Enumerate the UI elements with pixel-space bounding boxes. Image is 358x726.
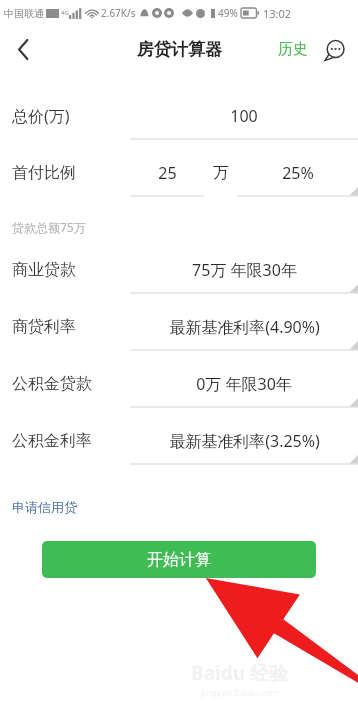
staticText: 25 <box>158 162 177 184</box>
button[interactable]: 25% <box>238 149 358 197</box>
button[interactable]: 首付比例 <box>0 149 358 197</box>
button[interactable]: 公积金利率 <box>0 417 358 465</box>
staticText: 13:02 <box>263 6 292 21</box>
button[interactable]: 开始计算 <box>42 541 316 578</box>
button[interactable]: 商业贷款 <box>0 246 358 294</box>
staticText: 75万 年限30年 <box>192 259 297 281</box>
staticText: 中国联通 <box>4 7 44 20</box>
staticText: 开始计算 <box>147 550 211 570</box>
staticText: 房贷计算器 <box>137 39 222 60</box>
staticText: 贷款总额75万 <box>12 219 86 235</box>
staticText: 0万 年限30年 <box>196 373 292 395</box>
button[interactable]: 最新基准利率(4.90%) <box>130 303 358 351</box>
staticText: 2.67K/s <box>101 6 136 20</box>
button[interactable]: 总价(万) <box>0 92 358 140</box>
button[interactable]: 100 <box>130 92 358 140</box>
button[interactable]: 申请信用贷 <box>12 499 77 515</box>
staticText: 最新基准利率(4.90%) <box>169 316 320 338</box>
button[interactable]: 最新基准利率(3.25%) <box>130 417 358 465</box>
staticText: 首付比例 <box>12 163 130 183</box>
staticText: 25% <box>282 162 314 184</box>
staticText: 商贷利率 <box>12 317 130 337</box>
button[interactable]: 商贷利率 <box>0 303 358 351</box>
staticText: 最新基准利率(3.25%) <box>169 430 320 452</box>
staticText: 4G <box>61 9 69 17</box>
staticText: 申请信用贷 <box>12 499 77 515</box>
staticText: 49% <box>218 6 238 20</box>
button[interactable]: 75万 年限30年 <box>130 246 358 294</box>
staticText: 100 <box>230 105 258 127</box>
staticText: 历史 <box>278 40 308 59</box>
staticText: 商业贷款 <box>12 260 130 280</box>
staticText: 总价(万) <box>12 105 130 127</box>
button[interactable]: More options <box>320 35 350 65</box>
staticText: jingyan.baidu.com <box>201 686 279 698</box>
button[interactable]: Back <box>0 26 46 72</box>
button[interactable]: 25 <box>130 149 204 197</box>
staticText: 公积金利率 <box>12 431 130 451</box>
staticText: Baidu 经验 <box>191 660 288 686</box>
staticText: 公积金贷款 <box>12 374 130 394</box>
staticText: 万 <box>213 163 229 183</box>
button[interactable]: 0万 年限30年 <box>130 360 358 408</box>
button[interactable]: 公积金贷款 <box>0 360 358 408</box>
button[interactable]: 历史 <box>272 32 314 67</box>
